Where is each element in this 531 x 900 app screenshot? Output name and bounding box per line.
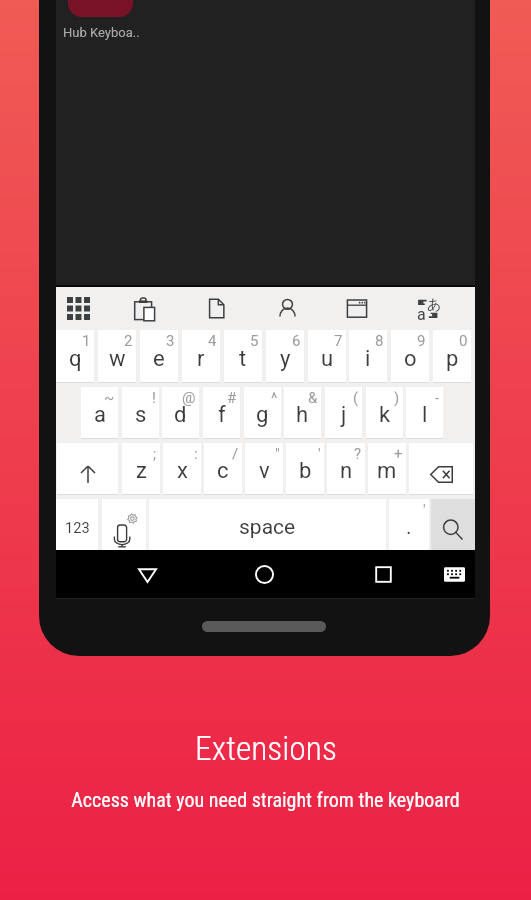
staticText: p <box>446 346 459 372</box>
button[interactable]: ! <box>122 387 159 439</box>
button[interactable]: 4 <box>182 330 220 383</box>
staticText: 1 <box>82 332 91 350</box>
staticText: d <box>174 402 187 428</box>
staticText: k <box>379 402 391 428</box>
button[interactable]: Switch keyboard <box>430 550 478 598</box>
staticText: 7 <box>334 332 343 350</box>
staticText: ' <box>423 501 426 519</box>
button[interactable]: ^ <box>244 387 281 439</box>
staticText: c <box>217 458 229 484</box>
staticText: 6 <box>292 332 301 350</box>
staticText: " <box>275 445 280 463</box>
staticText: 2 <box>124 332 133 350</box>
button[interactable]: Back <box>123 550 171 598</box>
button[interactable]: Shift <box>57 443 118 495</box>
button[interactable]: + <box>368 443 406 495</box>
staticText: m <box>377 458 397 484</box>
button[interactable]: ( <box>325 387 362 439</box>
button[interactable]: ) <box>366 387 403 439</box>
staticText: 123 <box>65 519 90 536</box>
staticText: y <box>280 346 291 372</box>
staticText: & <box>308 389 318 407</box>
staticText: f <box>218 402 226 428</box>
staticText: i <box>365 346 371 372</box>
button[interactable]: ? <box>327 443 365 495</box>
staticText: e <box>153 346 165 372</box>
staticText: 3 <box>166 332 175 350</box>
button[interactable]: ; <box>122 443 160 495</box>
button[interactable]: " <box>245 443 283 495</box>
button[interactable]: Translate <box>406 286 450 330</box>
staticText: ; <box>153 445 157 463</box>
button[interactable]: 3 <box>140 330 178 383</box>
staticText: ( <box>353 389 359 407</box>
button[interactable]: 7 <box>308 330 346 383</box>
button[interactable]: 5 <box>224 330 262 383</box>
button[interactable]: Voice input <box>102 499 146 551</box>
staticText: 8 <box>375 332 384 350</box>
button[interactable]: ' <box>389 499 429 551</box>
staticText: Access what you need straight from the k… <box>71 788 460 811</box>
staticText: g <box>256 402 269 428</box>
staticText: a <box>417 305 426 324</box>
staticText: ~ <box>104 389 115 407</box>
staticText: @ <box>182 389 196 407</box>
button[interactable]: Document <box>194 286 238 330</box>
button[interactable]: Hub Keyboard app <box>68 0 133 17</box>
button[interactable]: Clipboard <box>123 286 167 330</box>
button[interactable]: 6 <box>266 330 304 383</box>
staticText: w <box>109 346 126 372</box>
button[interactable]: 1 <box>56 330 94 383</box>
button[interactable]: Browser <box>335 286 379 330</box>
button[interactable]: 0 <box>433 330 471 383</box>
button[interactable]: Search <box>431 499 475 551</box>
staticText: ' <box>318 445 321 463</box>
staticText: ^ <box>271 389 278 407</box>
button[interactable]: @ <box>162 387 199 439</box>
button[interactable]: - <box>406 387 443 439</box>
button[interactable]: space <box>149 499 386 551</box>
staticText: ) <box>394 389 400 407</box>
button[interactable]: Home <box>240 550 288 598</box>
staticText: u <box>321 346 334 372</box>
staticText: 5 <box>250 332 259 350</box>
staticText: ! <box>152 389 156 407</box>
staticText: v <box>259 458 270 484</box>
button[interactable]: ' <box>286 443 324 495</box>
button[interactable]: / <box>204 443 242 495</box>
staticText: n <box>340 458 353 484</box>
button[interactable]: Recents <box>359 550 407 598</box>
staticText: l <box>422 402 428 428</box>
button[interactable]: Account <box>265 286 309 330</box>
staticText: 4 <box>208 332 217 350</box>
button[interactable]: & <box>284 387 321 439</box>
button[interactable]: # <box>203 387 240 439</box>
staticText: ? <box>354 445 362 463</box>
button[interactable]: : <box>163 443 201 495</box>
staticText: / <box>232 445 239 463</box>
staticText: Extensions <box>195 729 337 768</box>
staticText: j <box>341 402 347 428</box>
staticText: x <box>177 458 188 484</box>
staticText: space <box>239 515 296 540</box>
button[interactable]: Apps <box>56 286 100 330</box>
staticText: : <box>194 445 198 463</box>
staticText: t <box>239 346 247 372</box>
staticText: . <box>406 515 412 540</box>
button[interactable]: Backspace <box>409 443 473 495</box>
staticText: r <box>197 346 205 372</box>
staticText: あ <box>427 296 442 314</box>
staticText: + <box>394 445 403 463</box>
staticText: h <box>296 402 309 428</box>
button[interactable]: 9 <box>391 330 429 383</box>
staticText: # <box>227 389 237 407</box>
staticText: 0 <box>459 332 468 350</box>
button[interactable]: 123 <box>56 499 98 551</box>
button[interactable]: 8 <box>349 330 387 383</box>
staticText: z <box>136 458 147 484</box>
button[interactable]: 2 <box>98 330 136 383</box>
staticText: 9 <box>417 332 426 350</box>
button[interactable]: ~ <box>81 387 118 439</box>
staticText: o <box>404 346 417 372</box>
staticText: - <box>435 389 440 407</box>
